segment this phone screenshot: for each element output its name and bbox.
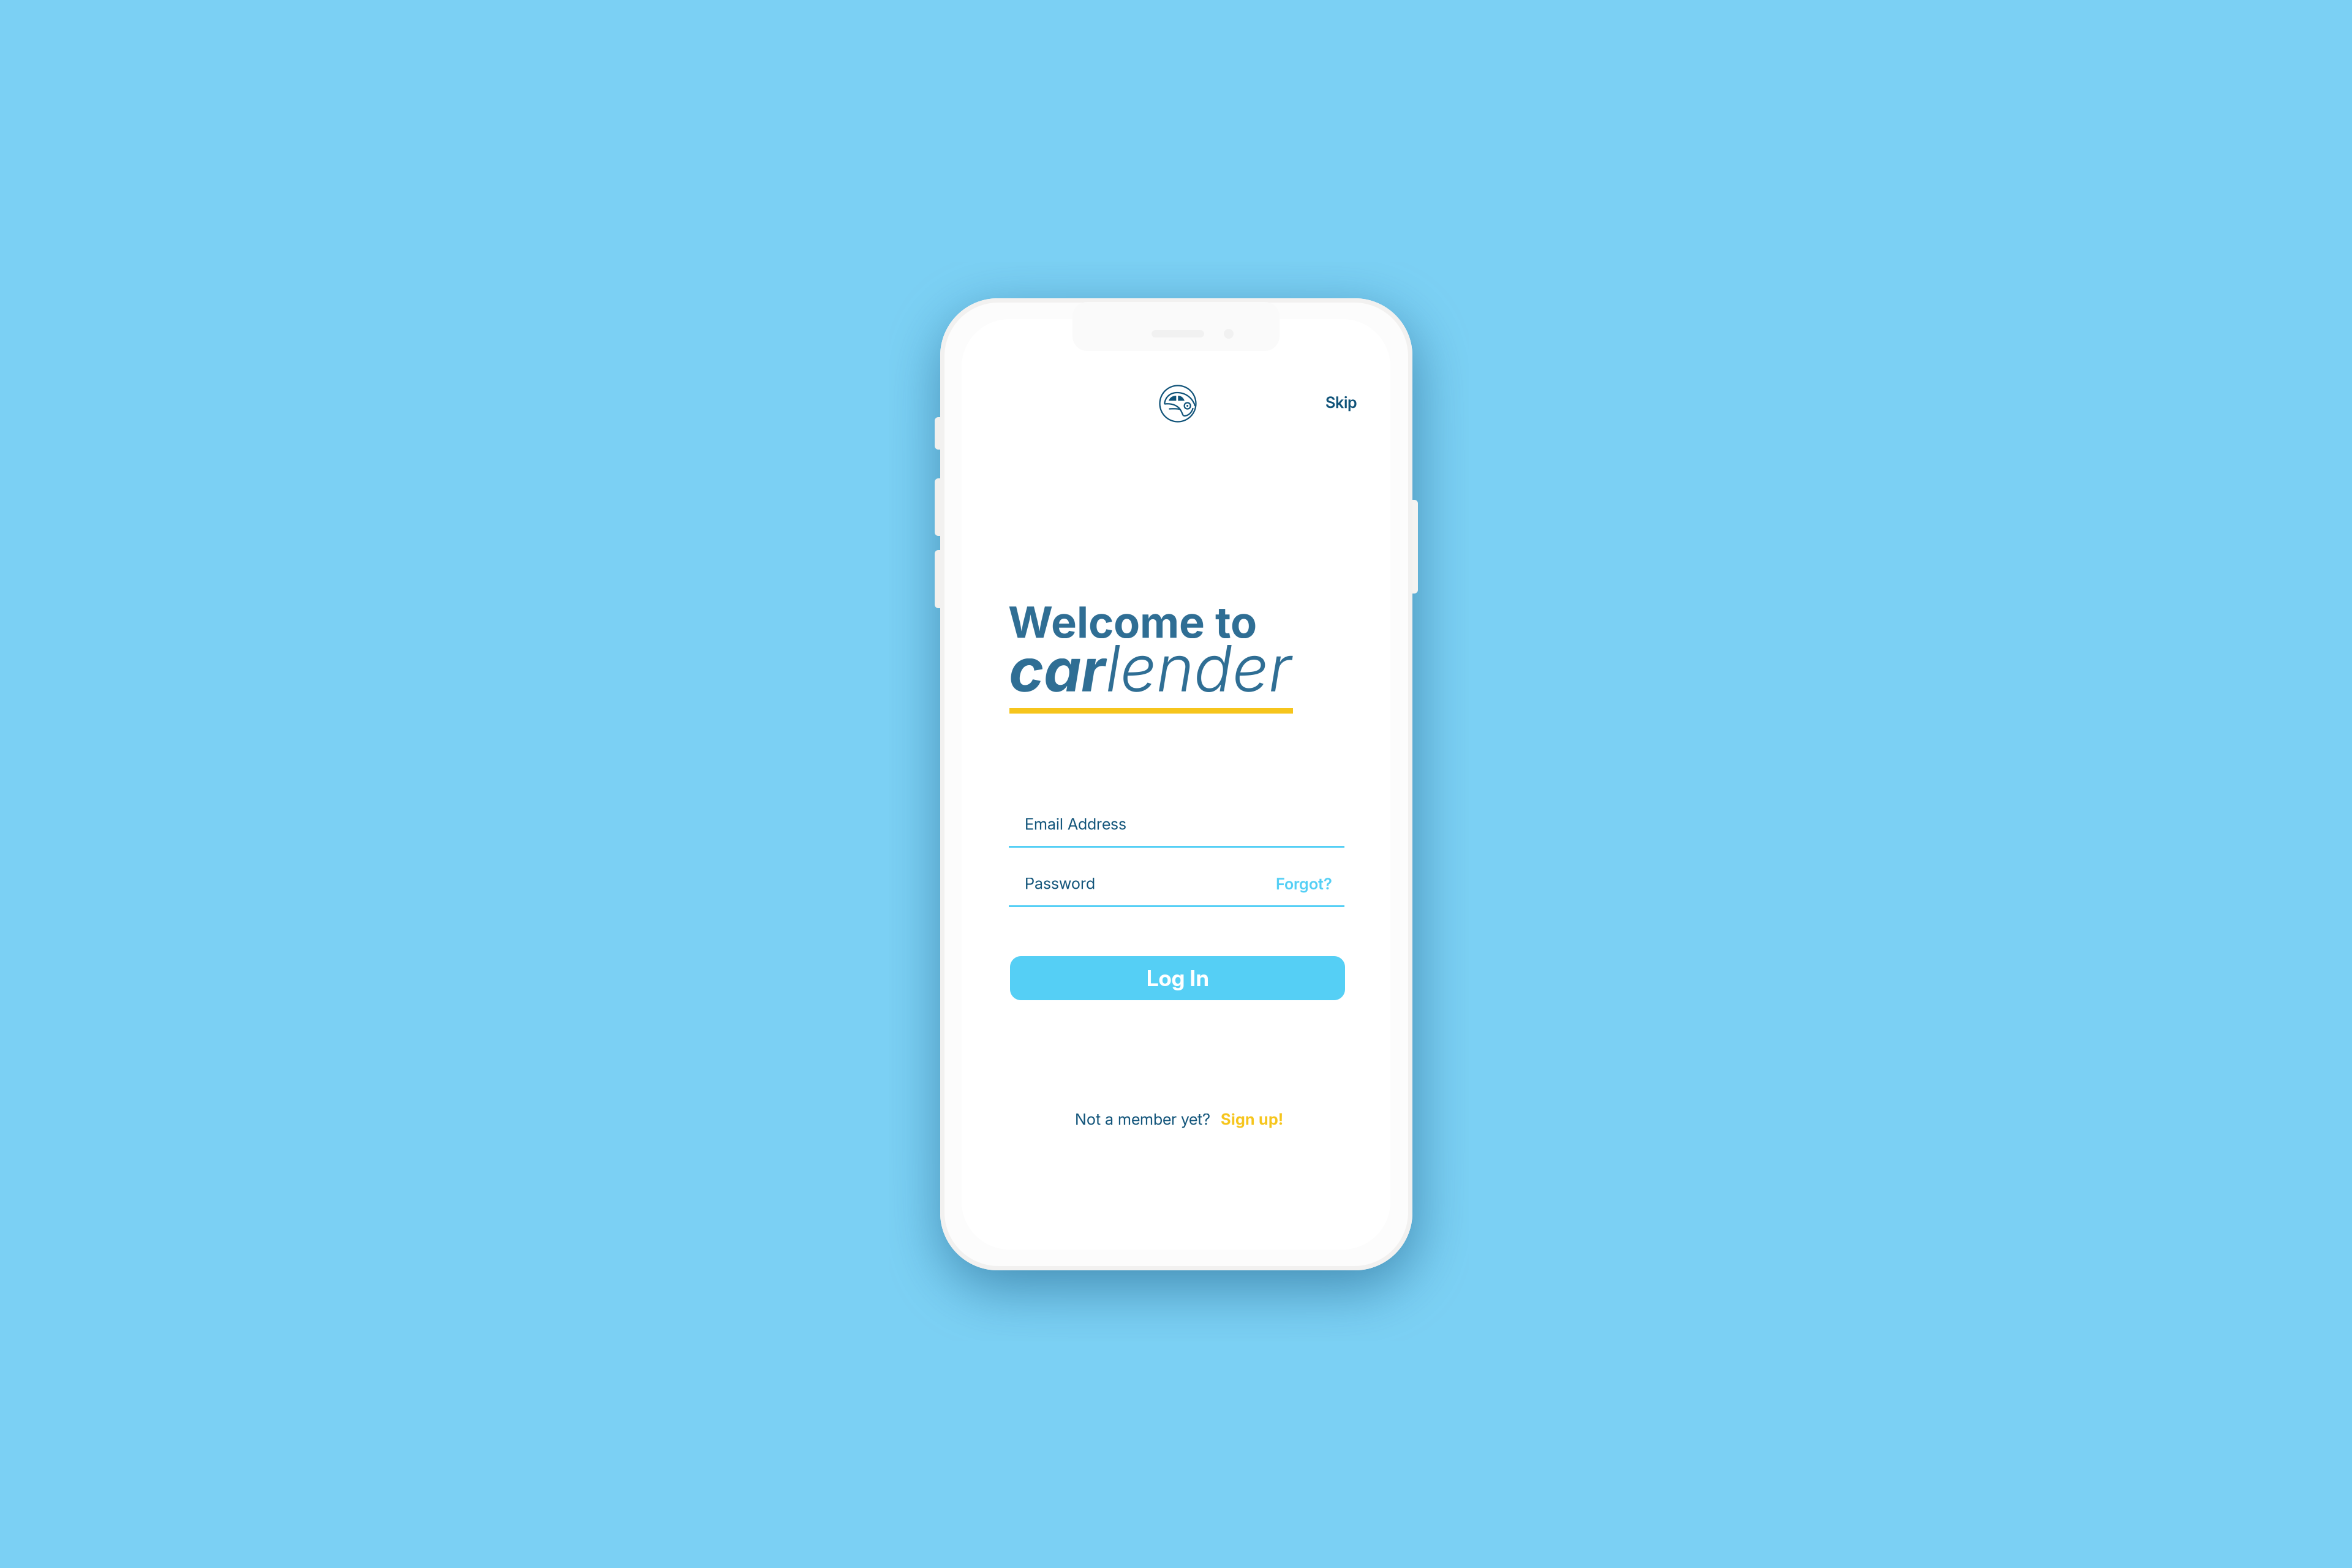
staticText: car xyxy=(1009,634,1106,706)
button[interactable]: Skip xyxy=(1301,386,1357,418)
button[interactable]: Sign up! xyxy=(1221,1110,1283,1129)
staticText: Welcome to xyxy=(1008,596,1257,648)
staticText: Log In xyxy=(1146,965,1209,992)
button[interactable]: Forgot? xyxy=(1240,868,1332,900)
staticText: Email Address xyxy=(1025,815,1126,833)
staticText: Sign up! xyxy=(1221,1110,1283,1129)
staticText: Forgot? xyxy=(1276,874,1332,893)
button[interactable]: Log In xyxy=(1010,956,1345,1000)
staticText: Password xyxy=(1025,874,1095,893)
staticText: Not a member yet? xyxy=(1075,1110,1210,1129)
staticText: Skip xyxy=(1325,393,1357,412)
staticText: lender xyxy=(1106,630,1291,707)
button[interactable]: Carlender xyxy=(1151,377,1204,430)
